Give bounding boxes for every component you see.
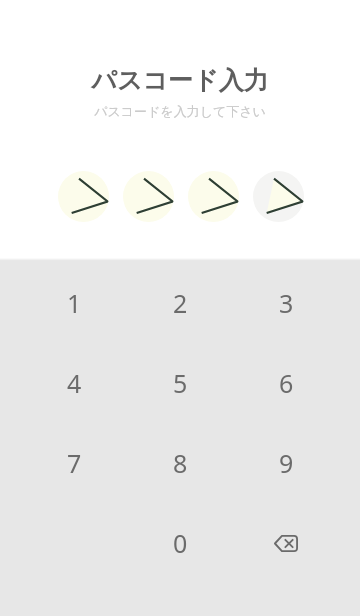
staticText: 2 [173, 286, 188, 320]
button[interactable]: 8 [127, 423, 233, 503]
button[interactable]: 2 [127, 263, 233, 343]
staticText: パスコード入力 [0, 65, 360, 96]
button[interactable]: 1 [21, 263, 127, 343]
staticText: 1 [67, 286, 82, 320]
button[interactable]: 5 [127, 343, 233, 423]
staticText: 0 [173, 526, 188, 560]
staticText: 9 [279, 446, 294, 480]
button[interactable]: 7 [21, 423, 127, 503]
staticText: パスコードを入力して下さい [0, 103, 360, 119]
button[interactable]: Delete [233, 503, 339, 583]
button[interactable]: 9 [233, 423, 339, 503]
button[interactable]: 3 [233, 263, 339, 343]
staticText: 4 [67, 366, 82, 400]
button[interactable]: 0 [127, 503, 233, 583]
button[interactable]: 6 [233, 343, 339, 423]
staticText: 5 [173, 366, 188, 400]
staticText: 3 [279, 286, 294, 320]
staticText: 6 [279, 366, 294, 400]
button[interactable]: 4 [21, 343, 127, 423]
staticText: 8 [173, 446, 188, 480]
staticText: 7 [67, 446, 82, 480]
